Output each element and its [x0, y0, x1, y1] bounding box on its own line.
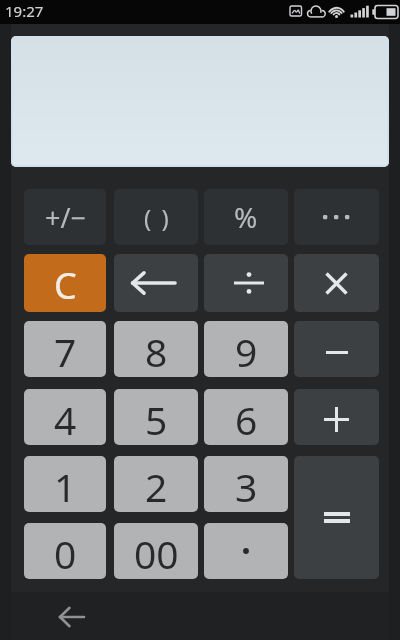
button[interactable]: ( ): [114, 189, 198, 245]
button[interactable]: 8: [114, 321, 198, 377]
button[interactable]: 2: [114, 456, 198, 512]
staticText: 9: [235, 325, 258, 377]
button[interactable]: [294, 189, 379, 245]
staticText: +/−: [45, 199, 86, 236]
staticText: 7: [54, 325, 77, 377]
button[interactable]: 1: [24, 456, 106, 512]
button[interactable]: [294, 456, 379, 579]
button[interactable]: 3: [204, 456, 288, 512]
staticText: 1: [54, 460, 77, 512]
staticText: 0: [54, 527, 77, 579]
staticText: 00: [134, 527, 179, 579]
button[interactable]: [114, 254, 198, 312]
button[interactable]: 6: [204, 389, 288, 445]
button[interactable]: [204, 254, 288, 312]
button[interactable]: C: [24, 254, 106, 312]
staticText: 19:27: [5, 1, 44, 21]
staticText: 3: [235, 460, 258, 512]
button[interactable]: 7: [24, 321, 106, 377]
staticText: 6: [235, 393, 258, 445]
button[interactable]: 5: [114, 389, 198, 445]
button[interactable]: 00: [114, 523, 198, 579]
button[interactable]: [294, 254, 379, 312]
button[interactable]: [294, 321, 379, 377]
staticText: 8: [145, 325, 168, 377]
button[interactable]: 4: [24, 389, 106, 445]
staticText: 4: [54, 393, 77, 445]
staticText: %: [234, 198, 258, 236]
button[interactable]: +/−: [24, 189, 106, 245]
staticText: 2: [145, 460, 168, 512]
button[interactable]: 0: [24, 523, 106, 579]
staticText: ( ): [144, 201, 169, 234]
button[interactable]: [52, 601, 92, 633]
staticText: 5: [145, 393, 168, 445]
staticText: C: [54, 261, 77, 310]
button[interactable]: 9: [204, 321, 288, 377]
button[interactable]: [294, 389, 379, 445]
button[interactable]: [204, 523, 288, 579]
button[interactable]: %: [204, 189, 288, 245]
